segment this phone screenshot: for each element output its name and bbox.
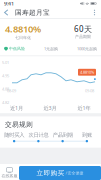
staticText: 随时买入 <box>4 132 24 138</box>
button[interactable]: 近1月 <box>0 104 33 111</box>
staticText: 1000元起购 <box>77 46 97 51</box>
staticText: 立即购买 <box>36 169 64 177</box>
staticText: / 安全便捷 <box>65 170 83 176</box>
button[interactable]: 近3月 <box>33 104 67 111</box>
staticText: 国寿超月宝 <box>15 8 50 17</box>
staticText: 09-08 <box>85 88 94 93</box>
staticText: 60天 <box>74 24 92 34</box>
button[interactable]: 近1年 <box>67 104 101 111</box>
staticText: 七日年化 <box>15 35 31 40</box>
staticText: 七日年化收益率 <box>5 60 54 68</box>
staticText: 08-09 <box>7 88 16 93</box>
staticText: 次日计息 <box>28 132 48 138</box>
button[interactable]: 返回 <box>1 7 12 18</box>
staticText: 4.88 <box>2 86 9 92</box>
staticText: 4.8810% <box>80 70 94 75</box>
staticText: 9:41 <box>4 0 14 7</box>
staticText: 4.8810% <box>5 23 41 35</box>
staticText: 在线客服 <box>1 173 17 178</box>
staticText: 产品到期 <box>53 132 73 138</box>
staticText: 近1年 <box>77 104 90 111</box>
staticText: 产品期限 <box>75 34 91 39</box>
staticText: 4.95 <box>2 73 9 78</box>
staticText: 交易规则 <box>5 120 33 129</box>
button[interactable]: 更多 <box>89 7 100 18</box>
staticText: 近1月 <box>10 104 23 111</box>
staticText: 4.82 <box>2 100 9 105</box>
staticText: 5.01 <box>2 60 9 65</box>
button[interactable]: 在线客服 <box>0 168 19 178</box>
button[interactable]: 立即购买 <box>19 166 101 180</box>
staticText: 到账 <box>82 132 92 138</box>
staticText: 中低风险 <box>9 46 25 51</box>
staticText: 近3月 <box>43 104 56 111</box>
staticText: 1元起购 <box>44 46 58 51</box>
